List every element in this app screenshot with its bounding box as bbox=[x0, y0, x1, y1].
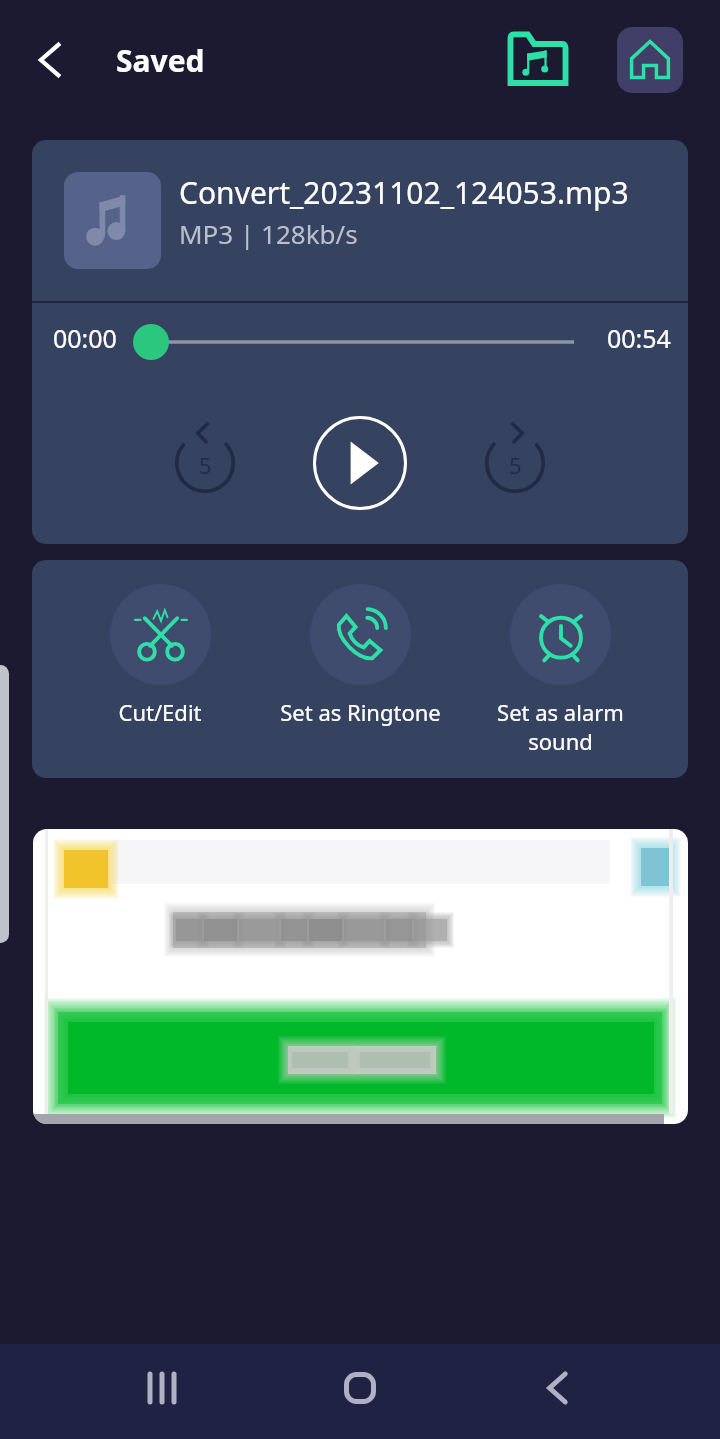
button[interactable]: Music folder bbox=[503, 25, 573, 95]
button[interactable]: Set as alarm sound bbox=[460, 584, 660, 756]
staticText: MP3 | 128kb/s bbox=[179, 216, 358, 251]
button[interactable]: Back bbox=[18, 28, 82, 92]
button[interactable]: Forward 5 seconds bbox=[471, 419, 559, 507]
staticText: 00:00 bbox=[53, 321, 117, 355]
button[interactable]: Play bbox=[310, 413, 410, 513]
button[interactable]: Rewind 5 seconds bbox=[161, 419, 249, 507]
button[interactable]: Cut/Edit bbox=[60, 584, 260, 727]
staticText: Saved bbox=[116, 40, 205, 81]
button[interactable]: Home bbox=[324, 1352, 396, 1424]
staticText: Cut/Edit bbox=[118, 697, 202, 727]
button[interactable]: Home bbox=[617, 27, 683, 93]
staticText: 5 bbox=[199, 450, 212, 480]
button[interactable]: Recents bbox=[126, 1352, 198, 1424]
staticText: 5 bbox=[509, 450, 522, 480]
staticText: 00:54 bbox=[607, 321, 671, 355]
staticText: Convert_20231102_124053.mp3 bbox=[179, 172, 629, 213]
button[interactable]: Back bbox=[522, 1352, 594, 1424]
button[interactable]: Set as Ringtone bbox=[260, 584, 460, 727]
staticText: Set as Ringtone bbox=[280, 697, 441, 727]
staticText: Set as alarm sound bbox=[497, 697, 624, 756]
